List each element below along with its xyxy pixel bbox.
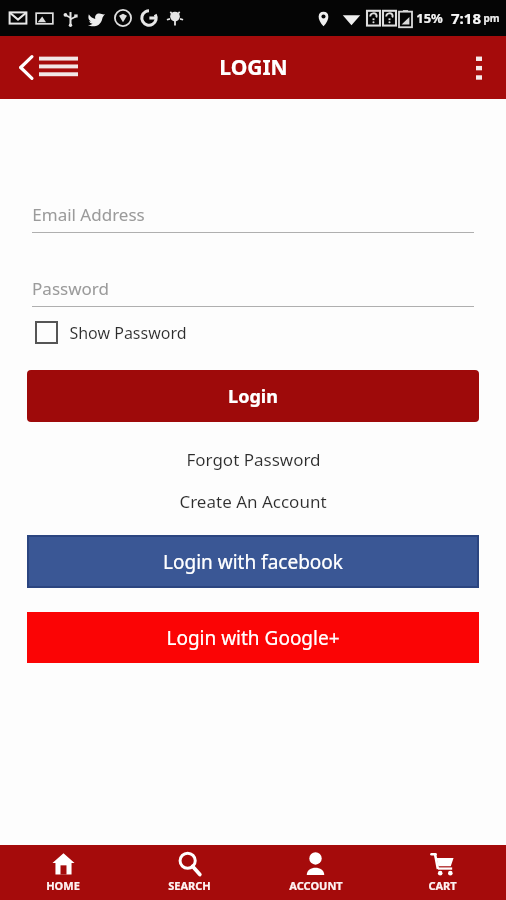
staticText: 7:18: [451, 8, 481, 28]
button[interactable]: Password: [32, 277, 474, 307]
button[interactable]: SEARCH: [126, 845, 252, 900]
staticText: Create An Account: [179, 490, 327, 513]
staticText: ACCOUNT: [289, 878, 343, 893]
staticText: Forgot Password: [186, 448, 321, 471]
button[interactable]: Login with facebook: [27, 535, 479, 588]
button[interactable]: Forgot Password: [0, 444, 506, 475]
button[interactable]: Login with Google+: [27, 612, 479, 663]
staticText: SEARCH: [168, 878, 211, 893]
staticText: Login with facebook: [163, 549, 343, 575]
staticText: Login: [228, 384, 278, 409]
staticText: Password: [32, 277, 109, 300]
staticText: Show Password: [69, 322, 187, 344]
staticText: LOGIN: [219, 53, 288, 82]
button[interactable]: Email Address: [32, 203, 474, 233]
button[interactable]: ACCOUNT: [252, 845, 379, 900]
staticText: pm: [483, 11, 500, 25]
staticText: 15%: [416, 9, 443, 27]
button[interactable]: Login: [27, 370, 479, 422]
staticText: Email Address: [32, 203, 145, 226]
button[interactable]: Show Password: [27, 316, 195, 349]
staticText: Login with Google+: [166, 625, 340, 651]
staticText: CART: [428, 878, 457, 893]
button[interactable]: Create An Account: [0, 486, 506, 517]
staticText: HOME: [46, 878, 80, 893]
button[interactable]: More options: [464, 45, 494, 91]
button[interactable]: HOME: [0, 845, 126, 900]
button[interactable]: CART: [379, 845, 506, 900]
button[interactable]: Back and open navigation menu: [14, 46, 82, 89]
